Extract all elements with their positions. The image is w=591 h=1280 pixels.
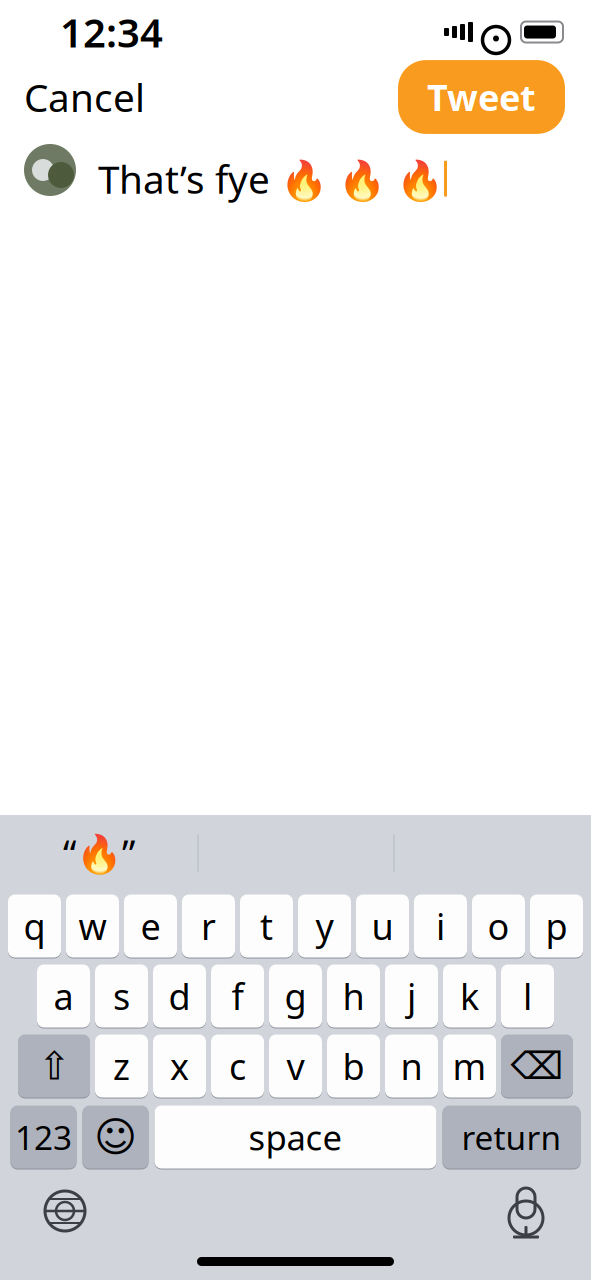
button[interactable]: j	[385, 963, 438, 1028]
staticText: a	[53, 972, 73, 1020]
staticText: w	[78, 902, 106, 950]
staticText: That’s fye 🔥 🔥 🔥	[98, 153, 444, 204]
staticText: o	[487, 902, 509, 950]
button[interactable]: n	[385, 1033, 438, 1098]
staticText: k	[460, 972, 479, 1020]
staticText: ⇧	[38, 1044, 70, 1088]
staticText: 123	[15, 1115, 72, 1159]
staticText: space	[248, 1114, 342, 1160]
staticText: i	[436, 902, 445, 950]
staticText: q	[23, 902, 45, 950]
staticText: t	[260, 902, 273, 950]
button[interactable]: d	[153, 963, 206, 1028]
button[interactable]: Tweet	[398, 60, 565, 134]
button[interactable]: e	[124, 893, 177, 958]
button[interactable]: r	[182, 893, 235, 958]
staticText: return	[461, 1115, 561, 1159]
staticText: f	[231, 972, 243, 1020]
staticText: e	[140, 902, 160, 950]
staticText: h	[342, 972, 364, 1020]
staticText: z	[113, 1042, 130, 1090]
button[interactable]: z	[95, 1033, 148, 1098]
button[interactable]: “🔥”	[1, 822, 197, 884]
button[interactable]: g	[269, 963, 322, 1028]
button[interactable]: p	[530, 893, 583, 958]
staticText: x	[170, 1042, 189, 1090]
button[interactable]: u	[356, 893, 409, 958]
staticText: “🔥”	[63, 828, 135, 878]
staticText: g	[284, 972, 306, 1020]
staticText: y	[315, 902, 333, 950]
button[interactable]: v	[269, 1033, 322, 1098]
button[interactable]: o	[472, 893, 525, 958]
button[interactable]: s	[95, 963, 148, 1028]
staticText: ⌫	[510, 1045, 563, 1087]
button[interactable]: m	[443, 1033, 496, 1098]
button[interactable]: c	[211, 1033, 264, 1098]
staticText: l	[523, 972, 532, 1020]
button[interactable]: Shift	[18, 1033, 90, 1098]
button[interactable]: Emoji	[82, 1104, 148, 1169]
staticText: d	[168, 972, 190, 1020]
button[interactable]: a	[37, 963, 90, 1028]
button[interactable]: b	[327, 1033, 380, 1098]
staticText: s	[113, 972, 130, 1020]
button[interactable]: k	[443, 963, 496, 1028]
staticText: m	[452, 1042, 486, 1090]
staticText: Cancel	[24, 71, 145, 123]
button[interactable]: y	[298, 893, 351, 958]
staticText: ☺	[94, 1113, 137, 1160]
button[interactable]: t	[240, 893, 293, 958]
staticText: u	[371, 902, 393, 950]
staticText: 12:34	[60, 5, 163, 58]
button[interactable]: i	[414, 893, 467, 958]
button[interactable]: l	[501, 963, 554, 1028]
button[interactable]: h	[327, 963, 380, 1028]
staticText: p	[545, 902, 567, 950]
button[interactable]: f	[211, 963, 264, 1028]
staticText: n	[400, 1042, 422, 1090]
button[interactable]: q	[8, 893, 61, 958]
button[interactable]: Dictation	[497, 1182, 555, 1240]
staticText: j	[407, 972, 416, 1020]
button[interactable]: Change keyboard	[36, 1182, 94, 1240]
button[interactable]: w	[66, 893, 119, 958]
staticText: c	[229, 1042, 246, 1090]
staticText: r	[201, 902, 216, 950]
button[interactable]: Delete	[501, 1033, 573, 1098]
staticText: v	[286, 1042, 304, 1090]
button[interactable]: x	[153, 1033, 206, 1098]
staticText: b	[342, 1042, 364, 1090]
button[interactable]: 123	[10, 1104, 76, 1169]
button[interactable]: return	[442, 1104, 580, 1169]
button[interactable]: Cancel	[0, 61, 169, 133]
button[interactable]: space	[154, 1104, 436, 1169]
staticText: Tweet	[427, 73, 536, 121]
